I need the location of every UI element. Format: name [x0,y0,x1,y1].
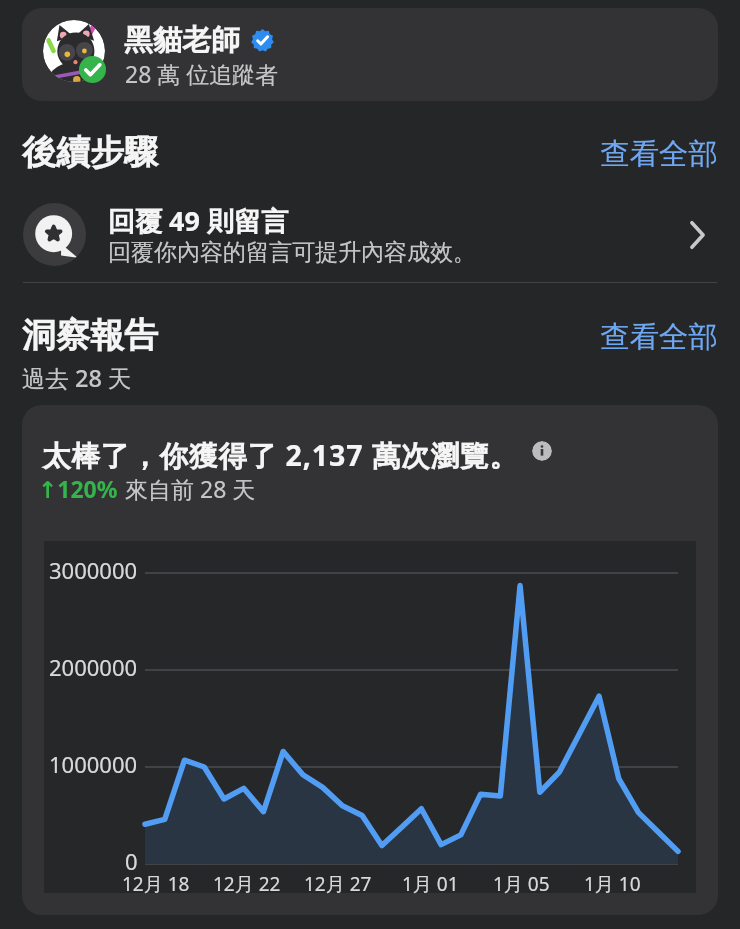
staticText: 查看全部 [600,136,718,173]
staticText: 12月 22 [213,871,281,897]
staticText: 查看全部 [600,319,718,356]
staticText: 3000000 [49,555,138,583]
staticText: 2000000 [49,652,138,680]
button[interactable]: 黑貓老師 [22,8,718,101]
staticText: 1000000 [49,749,138,777]
staticText: 12月 18 [122,871,190,897]
staticText: 回覆你內容的留言可提升內容成效。 [108,238,476,267]
staticText: ↑120% [38,473,118,504]
other: Open [681,218,715,252]
button[interactable]: 查看全部 [600,133,718,176]
staticText: 太棒了，你獲得了 2,137 萬次瀏覽。 [42,436,519,475]
staticText: 後續步驟 [22,131,158,174]
staticText: 過去 28 天 [22,362,132,394]
staticText: 0 [125,846,138,874]
button[interactable]: 查看全部 [600,316,718,359]
staticText: 1月 05 [493,871,550,897]
staticText: 1月 01 [402,871,459,897]
staticText: 來自前 28 天 [125,473,256,504]
staticText: 洞察報告 [22,314,158,357]
staticText: 1月 10 [584,871,641,897]
button[interactable]: 太棒了，你獲得了 2,137 萬次瀏覽。 [22,405,718,915]
staticText: 12月 27 [304,871,372,897]
staticText: 回覆 49 則留言 [108,202,288,239]
staticText: 28 萬 位追蹤者 [125,58,279,89]
staticText: 黑貓老師 [124,22,240,59]
button[interactable]: More info [532,441,552,461]
button[interactable]: 回覆 49 則留言 [0,190,740,280]
